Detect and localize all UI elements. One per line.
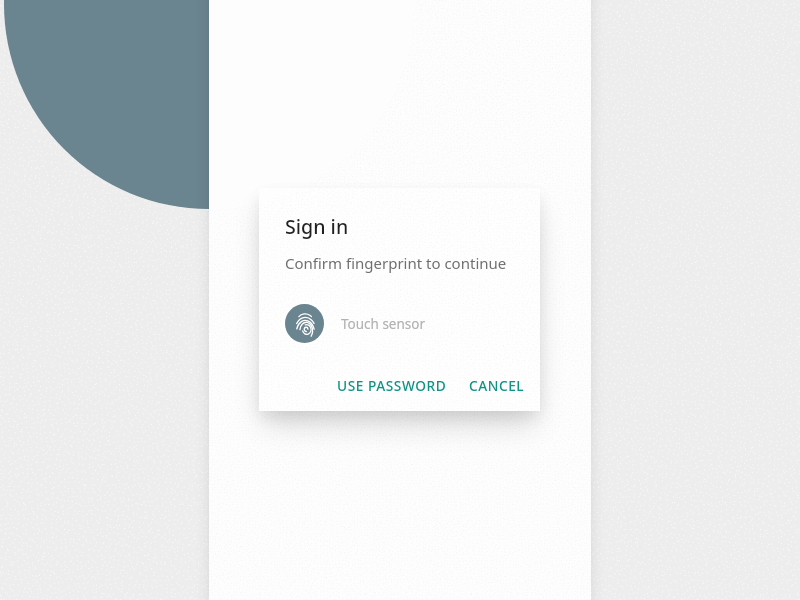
staticText: Sign in xyxy=(285,213,349,240)
button[interactable]: USE PASSWORD xyxy=(326,370,458,401)
button[interactable]: CANCEL xyxy=(458,370,536,401)
staticText: USE PASSWORD xyxy=(337,376,447,395)
staticText: Touch sensor xyxy=(341,315,426,333)
button[interactable]: Fingerprint sensor xyxy=(285,304,324,343)
staticText: Confirm fingerprint to continue xyxy=(285,253,507,273)
staticText: CANCEL xyxy=(469,376,525,395)
